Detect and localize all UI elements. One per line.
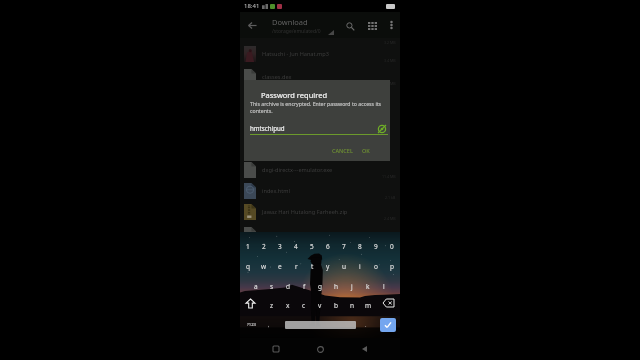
button[interactable]: Hatsuchi - Jun Hanat.mp3 — [240, 43, 400, 64]
button[interactable]: Back — [243, 16, 261, 34]
button[interactable]: dxgi-directx---emulator.exe — [240, 159, 400, 180]
button[interactable]: 6 — [320, 237, 336, 255]
staticText: z — [270, 301, 274, 310]
button[interactable] — [240, 224, 400, 232]
button[interactable]: u — [336, 257, 352, 275]
staticText: m — [365, 301, 372, 310]
button[interactable]: l — [376, 277, 392, 295]
button[interactable]: f — [296, 277, 312, 295]
staticText: 11.4 MB — [382, 174, 396, 179]
staticText: 2.1 kB — [385, 195, 396, 200]
button[interactable]: 0 — [384, 237, 400, 255]
staticText: dxgi-directx---emulator.exe — [262, 166, 387, 174]
staticText: , — [268, 321, 270, 328]
button[interactable]: 5 — [304, 237, 320, 255]
button[interactable]: More options — [383, 17, 399, 33]
button[interactable]: 1 — [240, 237, 256, 255]
button[interactable]: k — [360, 277, 376, 295]
button[interactable]: i — [352, 257, 368, 275]
button[interactable]: 7 — [336, 237, 352, 255]
staticText: 1.1 MB — [384, 81, 396, 86]
staticText: . — [365, 321, 367, 328]
staticText: 3.2 MB — [384, 40, 396, 45]
staticText: 18:41 — [244, 2, 260, 10]
button[interactable]: v — [312, 296, 328, 314]
button[interactable]: c — [296, 296, 312, 314]
staticText: d — [286, 282, 290, 291]
button[interactable]: Back — [356, 341, 372, 357]
button[interactable]: z — [264, 296, 280, 314]
staticText: 2 — [262, 242, 266, 251]
button[interactable]: Backspace — [379, 294, 397, 312]
button[interactable]: t — [304, 257, 320, 275]
button[interactable]: OK — [357, 143, 375, 157]
staticText: classes.dex — [262, 73, 387, 81]
button[interactable]: m — [360, 296, 376, 314]
button[interactable]: w — [256, 257, 272, 275]
button[interactable]: s — [264, 277, 280, 295]
staticText: index.html — [262, 187, 387, 195]
button[interactable]: h — [328, 277, 344, 295]
button[interactable]: Space — [285, 321, 356, 329]
staticText: e — [278, 262, 282, 271]
staticText: 7 — [342, 242, 346, 251]
staticText: OK — [362, 147, 370, 154]
button[interactable]: Recents — [268, 341, 284, 357]
button[interactable]: , — [263, 317, 275, 332]
staticText: 4 — [294, 242, 298, 251]
button[interactable]: o — [368, 257, 384, 275]
button[interactable]: n — [344, 296, 360, 314]
button[interactable]: index.html — [240, 180, 400, 201]
staticText: 9 — [374, 242, 378, 251]
button[interactable]: Enter — [380, 318, 396, 332]
button[interactable]: r — [288, 257, 304, 275]
button[interactable]: CANCEL — [329, 143, 355, 157]
button[interactable]: p — [384, 257, 400, 275]
staticText: v — [318, 301, 322, 310]
staticText: a — [254, 282, 258, 291]
staticText: CANCEL — [332, 147, 353, 154]
staticText: t — [311, 262, 314, 271]
staticText: Download — [272, 17, 308, 27]
staticText: 8 — [358, 242, 362, 251]
staticText: 5 — [310, 242, 314, 251]
staticText: n — [350, 301, 355, 310]
button[interactable]: 3 — [272, 237, 288, 255]
button[interactable]: Show password — [376, 123, 387, 134]
staticText: h — [334, 282, 339, 291]
button[interactable]: Jawaz Hari Hutalong Farheeh.zip — [240, 201, 400, 222]
button[interactable]: j — [344, 277, 360, 295]
button[interactable]: 2 — [256, 237, 272, 255]
button[interactable]: Grid view — [363, 17, 381, 35]
staticText: 2.4 MB — [384, 216, 396, 221]
button[interactable]: x — [280, 296, 296, 314]
button[interactable]: ?123 — [244, 317, 260, 332]
button[interactable]: 9 — [368, 237, 384, 255]
button[interactable]: a — [248, 277, 264, 295]
staticText: q — [246, 262, 250, 271]
button[interactable]: Shift — [241, 294, 259, 312]
button[interactable]: y — [320, 257, 336, 275]
button[interactable]: 8 — [352, 237, 368, 255]
button[interactable]: d — [280, 277, 296, 295]
staticText: 3.4 MB — [384, 58, 396, 63]
button[interactable]: b — [328, 296, 344, 314]
staticText: l — [383, 282, 385, 291]
staticText: r — [295, 262, 298, 271]
button[interactable]: Search — [341, 17, 359, 35]
staticText: g — [318, 282, 322, 291]
staticText: c — [302, 301, 306, 310]
staticText: This archive is encrypted. Enter passwor… — [250, 100, 390, 115]
staticText: o — [374, 262, 378, 271]
button[interactable]: Home — [312, 341, 328, 357]
button[interactable]: q — [240, 257, 256, 275]
staticText: hmtschipud — [250, 124, 285, 132]
button[interactable]: 4 — [288, 237, 304, 255]
button[interactable]: g — [312, 277, 328, 295]
staticText: Jawaz Hari Hutalong Farheeh.zip — [262, 208, 387, 216]
button[interactable]: classes.dex — [240, 66, 400, 87]
staticText: p — [390, 262, 394, 271]
button[interactable]: . — [360, 317, 372, 332]
button[interactable]: e — [272, 257, 288, 275]
staticText: 6 — [326, 242, 330, 251]
